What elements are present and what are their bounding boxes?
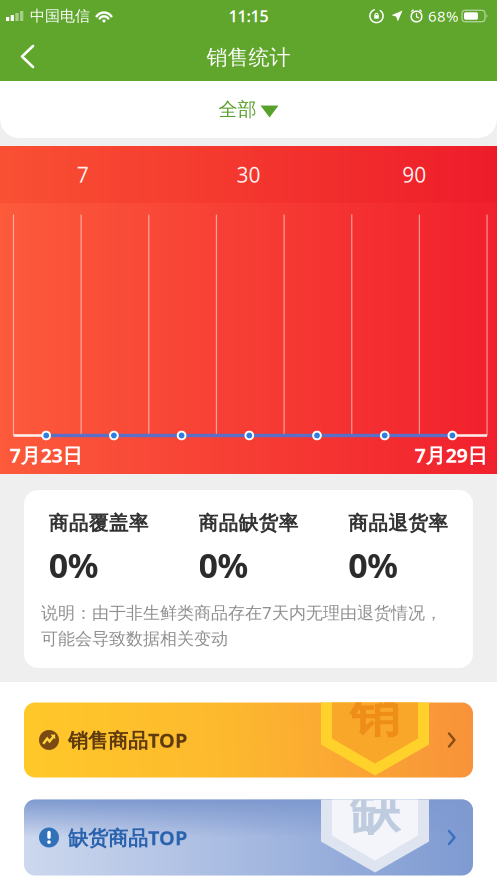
staticText: 说明：由于非生鲜类商品存在7天内无理由退货情况， — [41, 601, 442, 624]
staticText: 销售统计 — [206, 44, 290, 71]
staticText: 30 — [236, 160, 260, 189]
button[interactable]: 90 — [331, 146, 497, 203]
staticText: 商品缺货率 — [198, 511, 298, 536]
staticText: 销 — [350, 683, 400, 746]
staticText: 11:15 — [228, 5, 268, 27]
staticText: 7 — [77, 160, 89, 189]
staticText: 90 — [402, 160, 426, 189]
staticText: 全部 — [218, 97, 256, 121]
button[interactable]: 30 — [166, 146, 331, 203]
staticText: 7月29日 — [414, 441, 487, 469]
staticText: 0% — [198, 542, 248, 588]
button[interactable]: 7 — [0, 146, 166, 203]
staticText: 7月23日 — [9, 441, 82, 469]
staticText: 缺 — [350, 780, 400, 843]
staticText: 缺货商品TOP — [68, 824, 187, 851]
staticText: 0% — [49, 542, 99, 588]
staticText: 销售商品TOP — [68, 726, 187, 754]
button[interactable]: 缺 — [24, 799, 473, 875]
button[interactable]: Back — [0, 32, 34, 81]
staticText: 可能会导致数据相关变动 — [41, 628, 228, 649]
staticText: 商品退货率 — [348, 511, 448, 536]
staticText: 0% — [348, 542, 398, 588]
staticText: 68% — [428, 6, 458, 26]
button[interactable]: 销 — [24, 702, 473, 777]
staticText: 中国电信 — [30, 7, 90, 25]
staticText: 商品覆盖率 — [49, 511, 149, 536]
button[interactable]: 全部 — [183, 81, 313, 138]
